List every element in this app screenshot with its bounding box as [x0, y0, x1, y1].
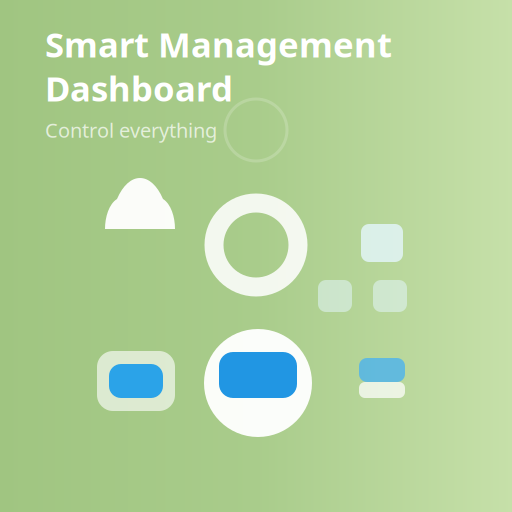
- button[interactable]: Action one: [97, 351, 175, 411]
- staticText: Smart Management: [45, 21, 392, 67]
- button[interactable]: Tile three: [373, 280, 407, 312]
- button[interactable]: Primary action: [204, 329, 312, 437]
- button[interactable]: Cloud: [101, 177, 179, 233]
- button[interactable]: Tile two: [318, 280, 352, 312]
- button[interactable]: Tile one: [361, 224, 403, 262]
- staticText: Control everything: [45, 117, 217, 143]
- staticText: Dashboard: [45, 65, 233, 111]
- button[interactable]: Status ring: [214, 203, 298, 287]
- button[interactable]: Action three: [359, 358, 405, 398]
